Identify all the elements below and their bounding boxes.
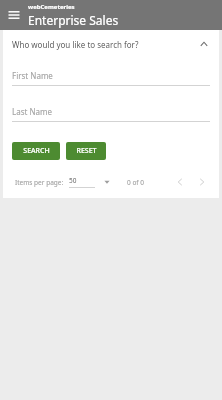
staticText: Last Name: [12, 106, 53, 117]
button[interactable]: Last Name: [12, 106, 210, 122]
staticText: First Name: [12, 70, 53, 81]
staticText: SEARCH: [23, 146, 50, 156]
staticText: 50: [69, 176, 77, 185]
staticText: Items per page:: [15, 178, 64, 187]
staticText: Enterprise Sales: [28, 12, 119, 28]
button[interactable]: SEARCH: [12, 142, 60, 160]
button[interactable]: RESET: [66, 142, 106, 160]
staticText: 0 of 0: [127, 178, 144, 187]
button[interactable]: Next page: [195, 175, 209, 189]
staticText: webCemeteries: [28, 3, 75, 11]
staticText: RESET: [76, 146, 97, 156]
button[interactable]: Open navigation menu: [4, 5, 24, 25]
button[interactable]: 50: [69, 176, 111, 188]
button[interactable]: Previous page: [173, 175, 187, 189]
button[interactable]: First Name: [12, 70, 210, 86]
other: Collapse section: [197, 37, 211, 51]
staticText: Who would you like to search for?: [12, 39, 139, 50]
button[interactable]: Who would you like to search for?: [3, 30, 219, 58]
